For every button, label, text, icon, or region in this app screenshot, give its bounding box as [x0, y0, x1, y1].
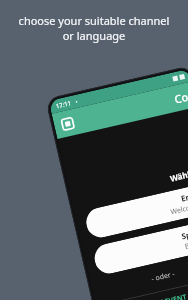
button[interactable]: MIT EVENT [105, 275, 188, 300]
staticText: Wähle ei [79, 165, 188, 204]
button[interactable]: Engl [83, 183, 188, 240]
staticText: Co [173, 89, 188, 107]
staticText: MIT EVENT [149, 292, 188, 300]
staticText: Spanis [180, 225, 188, 242]
staticText: Welcome [170, 201, 188, 217]
button[interactable]: Spanis [92, 219, 188, 276]
staticText: Buenos [184, 237, 188, 252]
staticText: 17:11 [55, 99, 73, 110]
button[interactable]: App logo [60, 116, 76, 132]
staticText: - oder - [101, 258, 188, 296]
staticText: choose your suitable channel or language [14, 13, 174, 43]
staticText: Engl [180, 189, 188, 204]
